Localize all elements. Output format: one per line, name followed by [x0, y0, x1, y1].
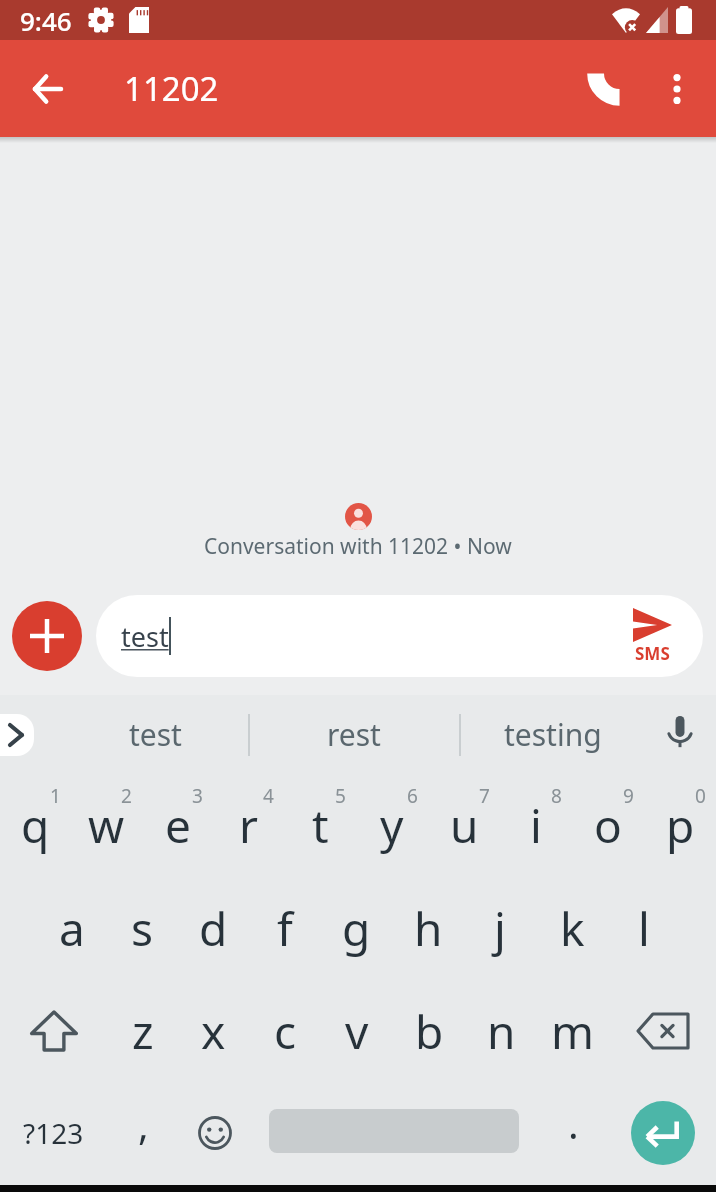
button[interactable]: a [36, 876, 107, 981]
staticText: 2 [121, 783, 132, 809]
staticText: x [201, 1000, 226, 1063]
button[interactable]: j [464, 876, 536, 981]
staticText: l [638, 897, 650, 960]
staticText: y [380, 794, 404, 857]
button[interactable] [12, 601, 82, 671]
staticText: 6 [407, 783, 418, 809]
button[interactable]: m [537, 981, 609, 1081]
button[interactable]: i [500, 774, 572, 876]
staticText: e [165, 794, 191, 857]
button[interactable] [0, 981, 107, 1081]
staticText: s [131, 897, 154, 960]
staticText: 7 [479, 783, 490, 809]
staticText: q [21, 794, 50, 857]
staticText: f [277, 897, 293, 960]
staticText: r [239, 794, 258, 857]
button[interactable]: k [536, 876, 608, 981]
staticText: test [121, 618, 169, 655]
staticText: 0 [695, 783, 706, 809]
staticText: . [568, 1096, 579, 1150]
staticText: 5 [335, 783, 346, 809]
button[interactable] [0, 714, 34, 756]
staticText: SMS [635, 642, 670, 665]
staticText: z [132, 1000, 154, 1063]
staticText: testing [504, 714, 602, 755]
staticText: 4 [263, 783, 274, 809]
staticText: n [487, 1000, 516, 1063]
button[interactable] [652, 64, 702, 114]
staticText: i [530, 794, 542, 857]
button[interactable] [660, 715, 700, 755]
staticText: 9 [623, 783, 634, 809]
staticText: j [494, 897, 506, 960]
staticText: w [88, 794, 125, 857]
staticText: c [274, 1000, 297, 1063]
button[interactable]: test [96, 595, 703, 677]
button[interactable]: test [65, 695, 245, 774]
staticText: b [415, 1000, 444, 1063]
button[interactable]: SMS [633, 608, 672, 665]
button[interactable] [609, 981, 716, 1081]
button[interactable]: f [249, 876, 320, 981]
button[interactable]: . [537, 1081, 609, 1185]
button[interactable]: s [107, 876, 178, 981]
button[interactable]: w [71, 774, 142, 876]
button[interactable] [26, 67, 70, 111]
button[interactable]: h [392, 876, 464, 981]
button[interactable]: ?123 [0, 1081, 107, 1185]
staticText: k [560, 897, 585, 960]
staticText: o [594, 794, 622, 857]
button[interactable]: r [213, 774, 284, 876]
staticText: 8 [551, 783, 562, 809]
staticText: g [342, 897, 371, 960]
button[interactable]: y [356, 774, 428, 876]
button[interactable]: t [284, 774, 356, 876]
button[interactable]: , [107, 1081, 179, 1185]
staticText: ?123 [23, 1114, 84, 1152]
button[interactable]: c [249, 981, 321, 1081]
staticText: t [312, 794, 329, 857]
button[interactable]: u [428, 774, 500, 876]
staticText: v [345, 1000, 369, 1063]
staticText: rest [327, 714, 381, 755]
button[interactable] [179, 1081, 251, 1185]
staticText: Conversation with 11202 • Now [204, 532, 512, 561]
button[interactable]: e [142, 774, 213, 876]
button[interactable]: z [107, 981, 178, 1081]
button[interactable]: d [178, 876, 249, 981]
button[interactable]: x [178, 981, 249, 1081]
button[interactable]: o [572, 774, 644, 876]
button[interactable] [576, 61, 632, 117]
staticText: p [666, 794, 695, 857]
staticText: h [414, 897, 443, 960]
staticText: 1 [50, 783, 61, 809]
staticText: d [199, 897, 228, 960]
button[interactable] [609, 1081, 716, 1185]
staticText: , [138, 1097, 149, 1151]
button[interactable] [251, 1081, 537, 1185]
staticText: 11202 [124, 66, 219, 111]
button[interactable]: g [320, 876, 392, 981]
button[interactable]: n [465, 981, 537, 1081]
button[interactable]: testing [463, 695, 643, 774]
button[interactable]: p [644, 774, 716, 876]
staticText: a [59, 897, 85, 960]
staticText: test [129, 714, 182, 755]
staticText: 9:46 [20, 3, 72, 38]
button[interactable]: b [393, 981, 465, 1081]
staticText: u [450, 794, 479, 857]
button[interactable]: l [608, 876, 680, 981]
button[interactable]: rest [264, 695, 444, 774]
staticText: 3 [192, 783, 203, 809]
staticText: m [551, 1000, 595, 1063]
button[interactable]: q [0, 774, 71, 876]
button[interactable]: v [321, 981, 393, 1081]
